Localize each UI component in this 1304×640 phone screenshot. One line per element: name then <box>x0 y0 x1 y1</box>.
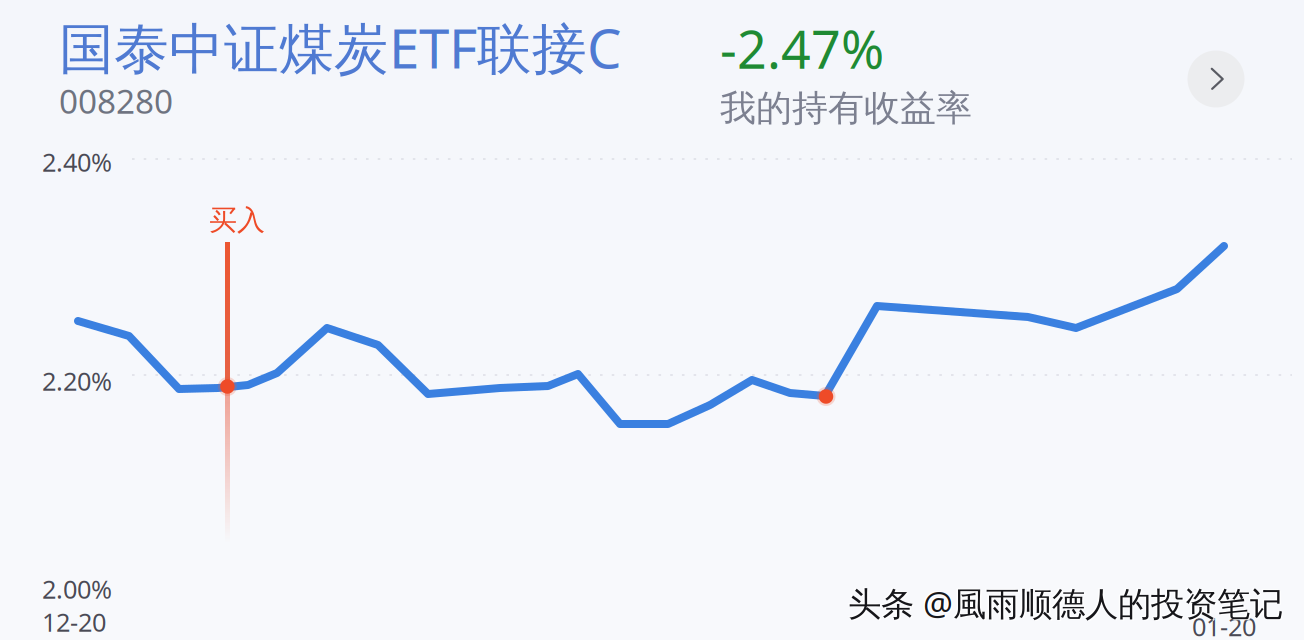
staticText: 我的持有收益率 <box>720 86 972 130</box>
staticText: 12-20 <box>42 605 106 639</box>
staticText: 买入 <box>209 203 265 237</box>
button[interactable]: -2.47% <box>720 14 972 130</box>
staticText: 008280 <box>59 79 173 123</box>
staticText: -2.47% <box>720 14 884 83</box>
staticText: 头条 @風雨顺德人的投资笔记 <box>846 580 1281 624</box>
staticText: 2.00% <box>42 572 112 606</box>
staticText: 2.20% <box>42 364 112 398</box>
staticText: 01-20 <box>1192 610 1256 640</box>
staticText: 头条 @風雨顺德人的投资笔记 <box>849 582 1284 626</box>
button[interactable]: 国泰中证煤炭ETF联接C <box>59 11 622 123</box>
staticText: 国泰中证煤炭ETF联接C <box>59 11 622 84</box>
staticText: 2.40% <box>42 145 112 179</box>
staticText: 头条 @風雨顺德人的投资笔记 <box>848 581 1283 625</box>
button[interactable]: Details <box>1187 50 1244 107</box>
